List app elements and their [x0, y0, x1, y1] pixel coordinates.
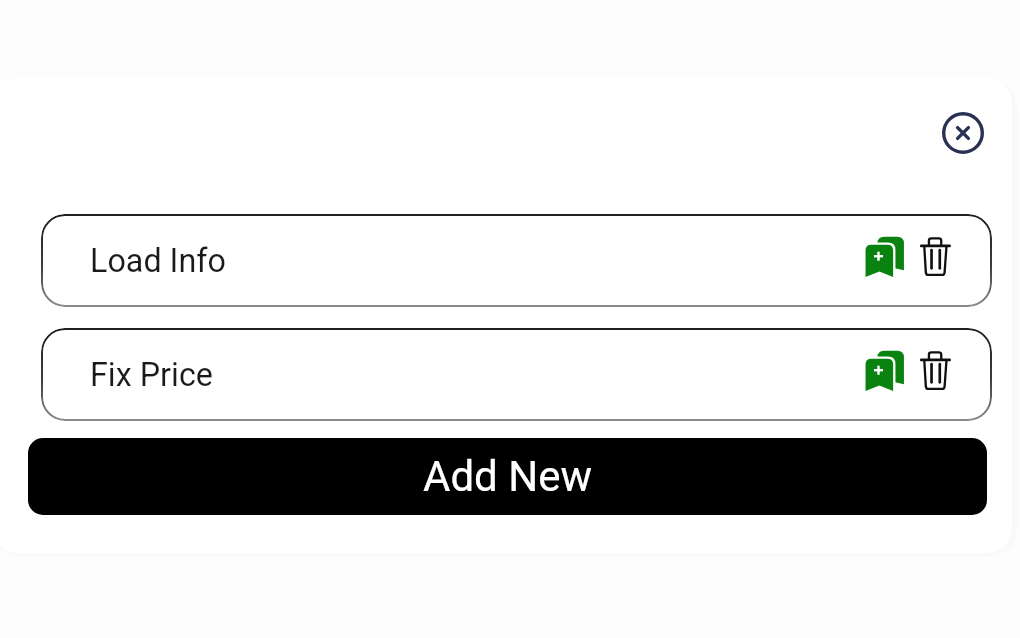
- button[interactable]: Close: [934, 104, 991, 161]
- staticText: Fix Price: [90, 356, 213, 394]
- staticText: Add New: [423, 452, 592, 501]
- button[interactable]: Delete: [908, 344, 962, 398]
- button[interactable]: Fix Price: [41, 328, 992, 421]
- staticText: Load Info: [90, 242, 226, 280]
- button[interactable]: Add to library: [859, 231, 913, 285]
- button[interactable]: Load Info: [41, 214, 992, 307]
- button[interactable]: Add to library: [859, 345, 913, 399]
- button[interactable]: Add New: [28, 438, 987, 515]
- button[interactable]: Delete: [908, 230, 962, 284]
